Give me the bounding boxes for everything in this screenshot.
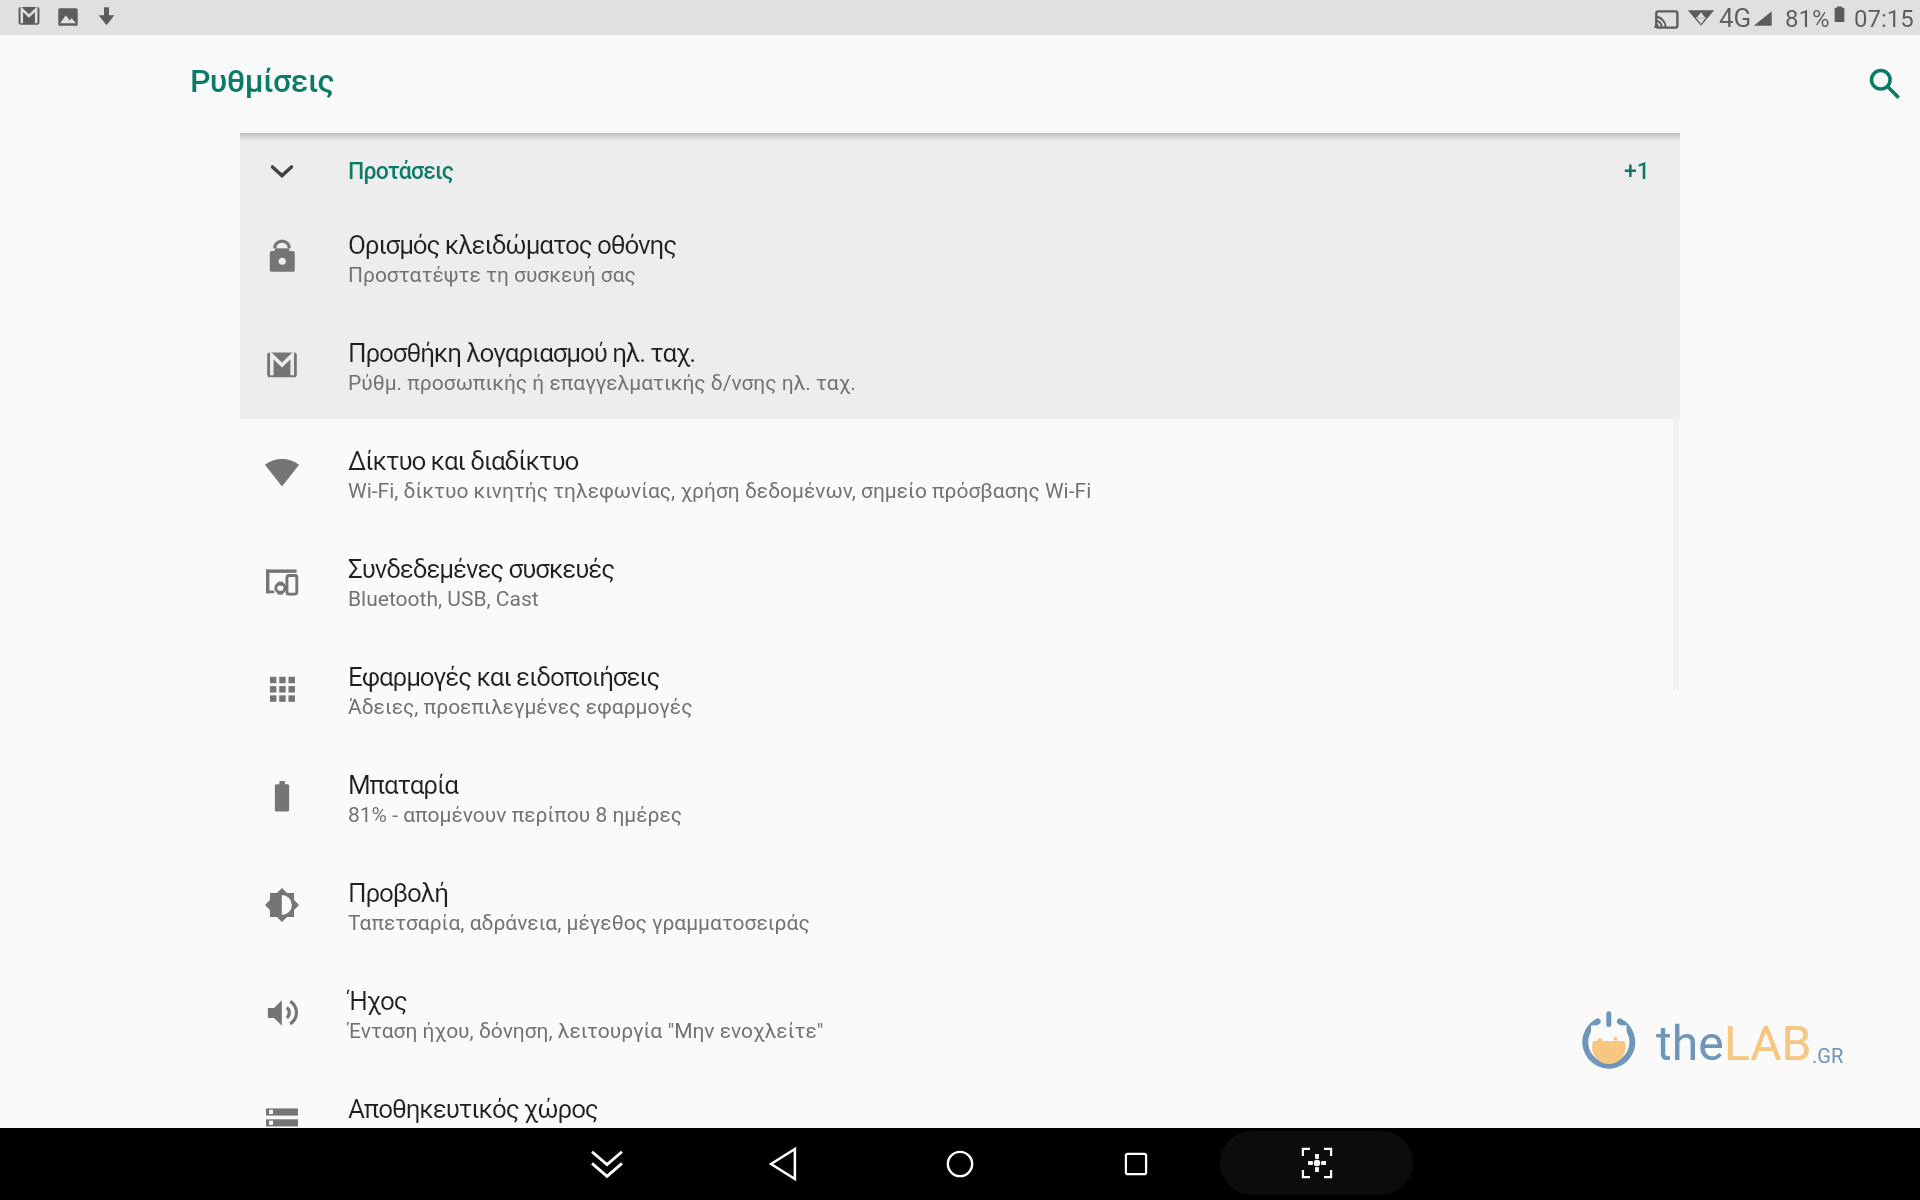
staticText: Ταπετσαρία, αδράνεια, μέγεθος γραμματοσε…: [348, 911, 810, 936]
staticText: Χρησιμοποιείται το 26% - Ελεύθερα 23,59 …: [348, 1127, 778, 1152]
staticText: Μπαταρία: [348, 770, 458, 800]
button[interactable]: Screenshot: [1220, 1131, 1413, 1195]
staticText: Wi-Fi, δίκτυο κινητής τηλεφωνίας, χρήση …: [348, 479, 1092, 504]
staticText: Εφαρμογές και ειδοποιήσεις: [348, 662, 660, 692]
staticText: Προστατέψτε τη συσκευή σας: [348, 263, 636, 288]
button[interactable]: Search: [1856, 55, 1912, 111]
staticText: 4G: [1719, 3, 1752, 33]
staticText: Ρυθμίσεις: [190, 62, 334, 100]
button[interactable]: Προτάσεις: [240, 133, 1680, 203]
staticText: Δίκτυο και διαδίκτυο: [348, 446, 579, 476]
staticText: Ήχος: [348, 986, 407, 1016]
staticText: Συνδεδεμένες συσκευές: [348, 554, 615, 584]
staticText: Ορισμός κλειδώματος οθόνης: [348, 230, 677, 260]
staticText: 07:15: [1854, 5, 1914, 33]
staticText: .GR: [1812, 1044, 1844, 1067]
staticText: Προβολή: [348, 878, 448, 908]
staticText: Άδειες, προεπιλεγμένες εφαρμογές: [348, 695, 693, 720]
staticText: Προτάσεις: [348, 158, 454, 185]
button[interactable]: Back: [748, 1128, 820, 1200]
button[interactable]: Home: [924, 1128, 996, 1200]
button[interactable]: Ορισμός κλειδώματος οθόνης: [240, 203, 1680, 311]
button[interactable]: Προσθήκη λογαριασμού ηλ. ταχ.: [240, 311, 1680, 419]
staticText: Προσθήκη λογαριασμού ηλ. ταχ.: [348, 338, 696, 368]
button[interactable]: Ήχος: [0, 959, 1920, 1067]
staticText: Bluetooth, USB, Cast: [348, 587, 539, 612]
button[interactable]: Εφαρμογές και ειδοποιήσεις: [0, 635, 1920, 743]
button[interactable]: Hide keyboard: [571, 1128, 643, 1200]
button[interactable]: Συνδεδεμένες συσκευές: [0, 527, 1920, 635]
staticText: Αποθηκευτικός χώρος: [348, 1094, 598, 1124]
button[interactable]: Αποθηκευτικός χώρος: [0, 1067, 1920, 1175]
button[interactable]: Προβολή: [0, 851, 1920, 959]
staticText: LAB: [1724, 1015, 1812, 1071]
staticText: the: [1656, 1015, 1724, 1071]
staticText: Ένταση ήχου, δόνηση, λειτουργία "Μην ενο…: [348, 1019, 824, 1044]
staticText: 81% - απομένουν περίπου 8 ημέρες: [348, 803, 683, 828]
button[interactable]: Recent apps: [1100, 1128, 1172, 1200]
button[interactable]: Δίκτυο και διαδίκτυο: [0, 419, 1920, 527]
button[interactable]: Μπαταρία: [0, 743, 1920, 851]
staticText: 81%: [1785, 5, 1830, 33]
staticText: +1: [1624, 158, 1650, 185]
staticText: Ρύθμ. προσωπικής ή επαγγελματικής δ/νσης…: [348, 371, 856, 396]
